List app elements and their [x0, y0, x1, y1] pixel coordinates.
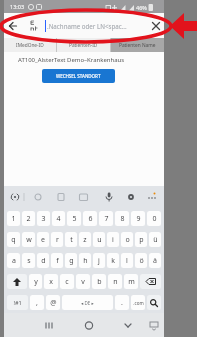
button[interactable]: , [30, 295, 44, 310]
button[interactable]: c [60, 274, 74, 289]
staticText: 3 [41, 214, 46, 224]
button[interactable]: WECHSEL STANDORT [42, 69, 115, 83]
staticText: n [113, 277, 118, 287]
button[interactable] [7, 274, 27, 289]
staticText: z [83, 235, 87, 245]
staticText: ◂ DE ▸ [81, 300, 94, 306]
staticText: b [97, 277, 102, 287]
button[interactable]: k [107, 253, 119, 268]
button[interactable]: a [7, 253, 20, 268]
staticText: a [12, 256, 16, 266]
button[interactable] [147, 295, 161, 310]
button[interactable]: p [135, 232, 147, 247]
staticText: 0 [152, 214, 157, 224]
button[interactable]: ü [149, 232, 161, 247]
staticText: s [27, 256, 31, 266]
button[interactable]: q [7, 232, 20, 247]
staticText: .com [133, 300, 144, 306]
button[interactable] [152, 22, 160, 30]
staticText: 8 [120, 214, 125, 224]
staticText: Patienten-ID [69, 42, 98, 49]
button[interactable] [84, 313, 124, 337]
staticText: 46% [136, 4, 147, 11]
staticText: r [56, 235, 59, 245]
button[interactable] [124, 313, 164, 337]
staticText: o [125, 235, 130, 245]
button[interactable]: d [37, 253, 49, 268]
button[interactable]: n [108, 274, 122, 289]
staticText: t [70, 235, 73, 245]
button[interactable]: i [107, 232, 119, 247]
button[interactable]: 0 [147, 211, 161, 226]
button[interactable]: Patienten-ID [57, 38, 110, 52]
staticText: 6 [88, 214, 93, 224]
button[interactable]: 6 [83, 211, 97, 226]
button[interactable]: s [22, 253, 35, 268]
staticText: ü [153, 235, 158, 245]
button[interactable]: b [92, 274, 106, 289]
staticText: m [128, 277, 135, 287]
staticText: h [83, 256, 88, 266]
button[interactable]: t [65, 232, 77, 247]
button[interactable]: r [51, 232, 63, 247]
button[interactable]: .com [131, 295, 145, 310]
button[interactable]: x [44, 274, 58, 289]
button[interactable]: 3 [37, 211, 50, 226]
staticText: WECHSEL STANDORT [56, 73, 101, 79]
button[interactable]: 1 [7, 211, 20, 226]
staticText: k [111, 256, 115, 266]
button[interactable]: 5 [67, 211, 81, 226]
button[interactable]: .Nachname oder LN<spac... [4, 13, 164, 38]
button[interactable]: o [121, 232, 133, 247]
button[interactable]: 7 [99, 211, 113, 226]
button[interactable]: @ [46, 295, 60, 310]
staticText: 2 [26, 214, 31, 224]
button[interactable]: g [65, 253, 77, 268]
button[interactable]: v [76, 274, 90, 289]
button[interactable]: m [124, 274, 138, 289]
button[interactable]: y [29, 274, 42, 289]
staticText: ä [153, 256, 157, 266]
staticText: !#1 [13, 299, 22, 306]
staticText: g [69, 256, 74, 266]
staticText: u [97, 235, 102, 245]
staticText: e [41, 235, 45, 245]
staticText: y [34, 277, 38, 287]
staticText: 7 [104, 214, 109, 224]
button[interactable]: 4 [52, 211, 65, 226]
button[interactable]: 8 [115, 211, 129, 226]
button[interactable]: e [37, 232, 49, 247]
button[interactable] [44, 313, 84, 337]
button[interactable]: . [115, 295, 129, 310]
staticText: v [81, 277, 85, 287]
button[interactable]: u [93, 232, 105, 247]
button[interactable]: IMedOne-ID [4, 38, 56, 52]
staticText: @ [50, 298, 57, 308]
button[interactable]: j [93, 253, 105, 268]
button[interactable]: 9 [131, 211, 145, 226]
staticText: .Nachname oder LN<spac... [47, 22, 152, 30]
staticText: w [26, 235, 32, 245]
staticText: p [139, 235, 144, 245]
staticText: IMedOne-ID [16, 42, 44, 49]
button[interactable]: f [51, 253, 63, 268]
staticText: l [126, 256, 128, 266]
button[interactable]: !#1 [7, 295, 28, 310]
staticText: AT100_AlsterText Demo–Krankenhaus [18, 56, 125, 64]
staticText: q [11, 235, 16, 245]
button[interactable]: ö [135, 253, 147, 268]
button[interactable]: ä [149, 253, 161, 268]
button[interactable]: w [22, 232, 35, 247]
button[interactable]: Patienten Name [111, 38, 164, 52]
staticText: x [49, 277, 53, 287]
staticText: d [41, 256, 46, 266]
staticText: Patienten Name [119, 42, 156, 49]
button[interactable] [140, 274, 161, 289]
button[interactable]: z [79, 232, 91, 247]
button[interactable]: h [79, 253, 91, 268]
button[interactable]: ◂ DE ▸ [62, 295, 113, 310]
button[interactable]: l [121, 253, 133, 268]
button[interactable]: 2 [22, 211, 35, 226]
staticText: ö [139, 256, 144, 266]
